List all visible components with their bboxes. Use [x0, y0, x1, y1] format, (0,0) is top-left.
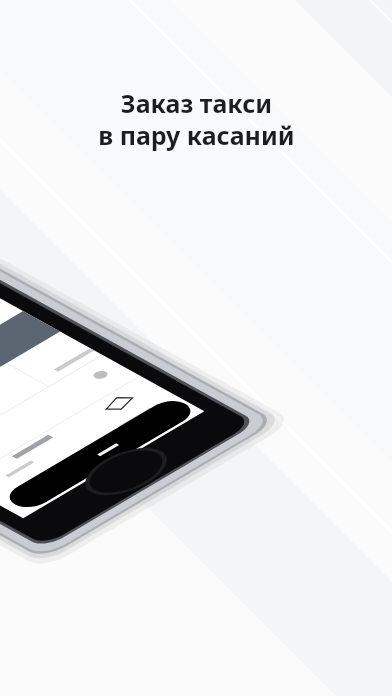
staticText: Заказ такси в пару касаний — [98, 86, 295, 152]
